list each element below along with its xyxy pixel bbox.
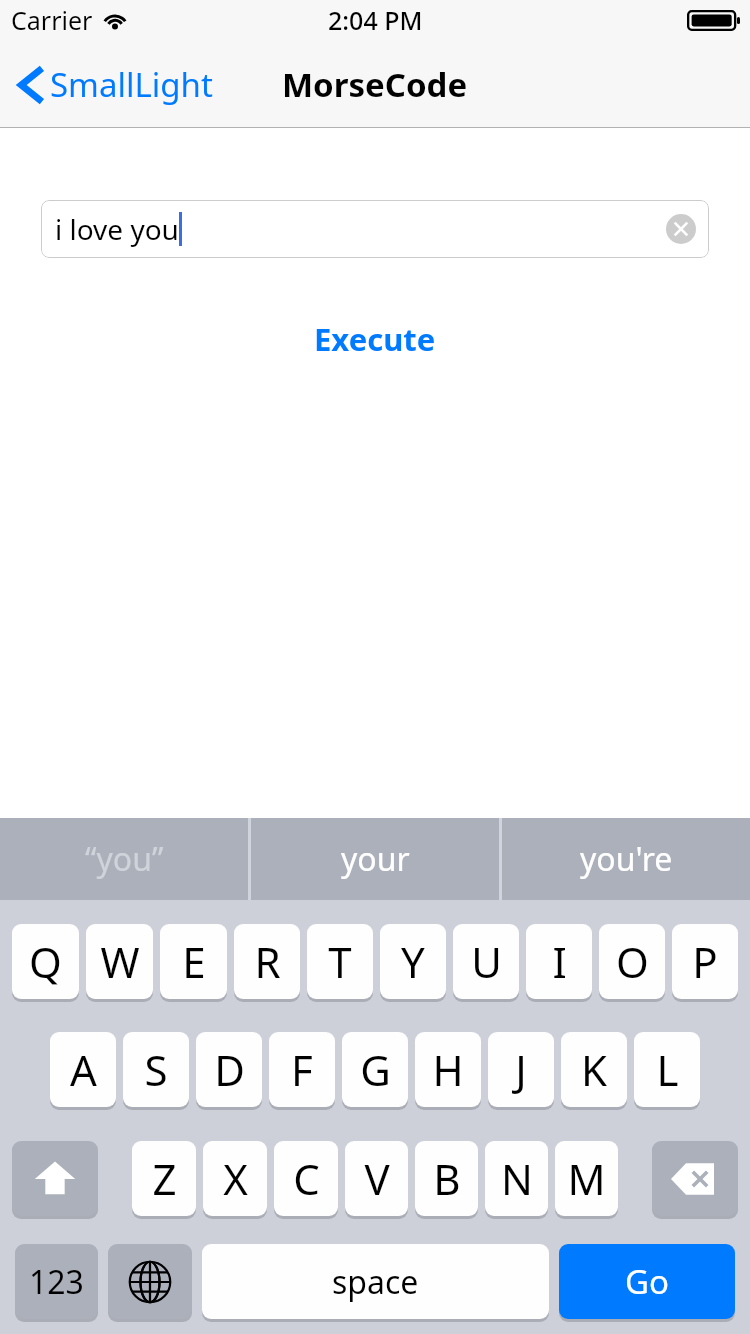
button[interactable]: M [555,1141,618,1216]
button[interactable]: Go [559,1244,735,1319]
staticText: Y [401,933,425,990]
other: Next keyboard [108,1244,192,1322]
button[interactable]: K [561,1032,627,1107]
staticText: U [471,933,502,990]
staticText: 123 [29,1260,84,1304]
button[interactable]: W [86,924,153,999]
staticText: W [100,933,140,990]
other: Shift [12,1141,98,1219]
button[interactable]: G [342,1032,408,1107]
staticText: D [214,1041,245,1098]
button[interactable]: N [485,1141,548,1216]
staticText: O [616,933,649,990]
button[interactable]: V [345,1141,408,1216]
staticText: Z [152,1150,177,1207]
staticText: “you” [85,837,164,881]
staticText: E [182,933,206,990]
button[interactable]: O [599,924,665,999]
button[interactable]: 123 [15,1244,98,1319]
staticText: you're [580,837,673,881]
button[interactable]: R [234,924,300,999]
button[interactable]: L [634,1032,700,1107]
button[interactable]: P [672,924,738,999]
staticText: SmallLight [50,62,213,107]
staticText: i love you [55,210,179,248]
staticText: F [291,1041,313,1098]
staticText: K [581,1041,607,1098]
button[interactable]: Z [132,1141,196,1216]
staticText: A [70,1041,97,1098]
button[interactable]: “you” [0,818,248,900]
staticText: J [515,1041,527,1098]
staticText: Q [29,933,62,990]
button[interactable] [652,1141,738,1216]
button[interactable]: you're [502,818,750,900]
staticText: S [144,1041,168,1098]
button[interactable]: S [123,1032,189,1107]
button[interactable]: F [269,1032,335,1107]
button[interactable]: i love you [41,200,709,258]
button[interactable]: Q [12,924,79,999]
staticText: M [567,1150,606,1207]
staticText: your [341,837,410,881]
staticText: P [692,933,718,990]
button[interactable]: Execute [298,310,452,368]
staticText: Go [625,1259,669,1304]
staticText: R [254,933,281,990]
staticText: Carrier [11,3,93,37]
staticText: Execute [314,318,436,360]
button[interactable]: H [415,1032,481,1107]
button[interactable]: X [203,1141,267,1216]
button[interactable]: space [202,1244,549,1319]
button[interactable]: D [196,1032,262,1107]
button[interactable]: SmallLight [14,56,217,113]
staticText: X [223,1150,248,1207]
button[interactable]: B [415,1141,478,1216]
staticText: G [360,1041,391,1098]
staticText: H [432,1041,464,1098]
staticText: T [328,933,352,990]
button[interactable] [108,1244,192,1319]
button[interactable]: C [274,1141,338,1216]
button[interactable]: J [488,1032,554,1107]
staticText: 2:04 PM [328,3,423,37]
button[interactable]: E [160,924,227,999]
staticText: L [656,1041,679,1098]
staticText: space [332,1260,419,1304]
staticText: MorseCode [282,62,468,107]
button[interactable] [12,1141,98,1216]
button[interactable]: T [307,924,373,999]
staticText: I [552,933,567,990]
button[interactable]: your [251,818,499,900]
button[interactable]: I [526,924,592,999]
staticText: N [501,1150,533,1207]
staticText: C [293,1150,320,1207]
staticText: V [364,1150,390,1207]
other: Backspace [652,1141,738,1219]
button[interactable]: A [50,1032,116,1107]
button[interactable]: Y [380,924,446,999]
button[interactable]: U [453,924,519,999]
staticText: B [433,1150,461,1207]
